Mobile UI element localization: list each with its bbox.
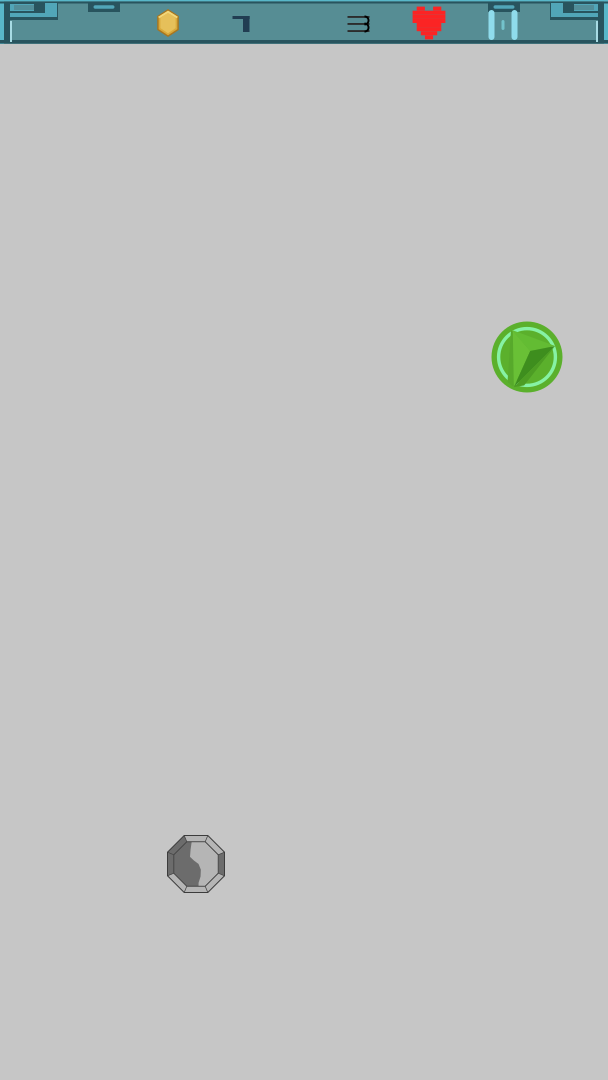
button[interactable]: Pause (481, 5, 525, 45)
